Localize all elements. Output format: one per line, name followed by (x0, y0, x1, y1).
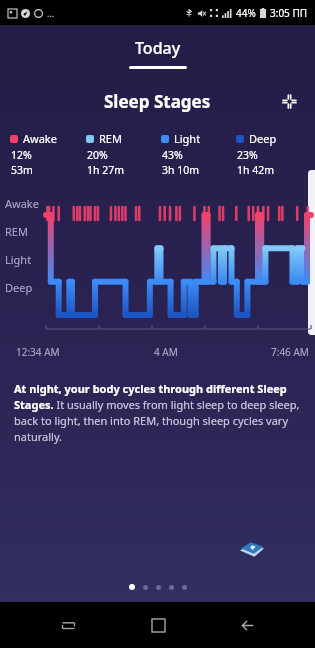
button[interactable] (143, 585, 148, 590)
staticText: ... (47, 7, 55, 19)
staticText: Light (5, 252, 32, 267)
staticText: Awake (5, 196, 39, 211)
staticText: Deep (249, 131, 277, 146)
button[interactable] (156, 585, 161, 590)
staticText: 3h 10m (162, 163, 200, 177)
staticText: 1h 42m (237, 163, 275, 177)
staticText: 20% (87, 148, 108, 162)
button[interactable]: REM (86, 131, 155, 177)
staticText: 12:34 AM (16, 345, 60, 359)
staticText: REM (99, 131, 122, 146)
button[interactable] (169, 585, 174, 590)
button[interactable]: Today (0, 37, 315, 69)
staticText: REM (5, 224, 28, 239)
staticText: At night, your body cycles through diffe… (14, 381, 301, 444)
staticText: 23% (237, 148, 258, 162)
staticText: 44% (236, 6, 256, 20)
staticText: Sleep Stages (104, 90, 211, 113)
button[interactable]: Recents (46, 603, 90, 647)
staticText: Light (174, 131, 201, 146)
staticText: 1h 27m (87, 163, 125, 177)
staticText: 43% (162, 148, 183, 162)
staticText: 7:46 AM (271, 345, 309, 359)
button[interactable] (129, 584, 135, 590)
staticText: 4 AM (154, 345, 178, 359)
button[interactable]: Home (136, 603, 180, 647)
staticText: 3:05 ПП (270, 6, 308, 20)
staticText: Deep (5, 280, 33, 295)
button[interactable] (182, 585, 187, 590)
button[interactable]: Light (161, 131, 230, 177)
staticText: Today (135, 37, 181, 59)
button[interactable]: Deep (236, 131, 305, 177)
staticText: Awake (23, 131, 57, 146)
staticText: 53m (11, 163, 33, 177)
button[interactable]: Collapse (275, 87, 303, 115)
staticText: 12% (11, 148, 32, 162)
button[interactable]: Back (225, 603, 269, 647)
button[interactable]: Awake (10, 131, 80, 177)
